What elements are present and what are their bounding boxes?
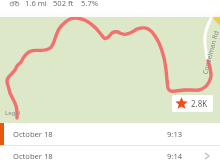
button[interactable]: 2.8K xyxy=(175,97,210,110)
button[interactable]: October 18 xyxy=(0,146,220,165)
staticText: 2.8K xyxy=(191,98,208,109)
button[interactable]: October 18 xyxy=(0,123,220,145)
staticText: Conzelman Rd xyxy=(200,30,220,75)
staticText: October 18 xyxy=(13,151,53,161)
staticText: Legal xyxy=(5,109,21,117)
staticText: 5.7% xyxy=(81,0,99,8)
staticText: 9:13 xyxy=(167,129,183,139)
staticText: 1.6 mi xyxy=(25,0,47,8)
staticText: 502 ft xyxy=(53,0,74,8)
staticText: 9:14 xyxy=(167,151,183,161)
staticText: October 18 xyxy=(13,129,53,139)
